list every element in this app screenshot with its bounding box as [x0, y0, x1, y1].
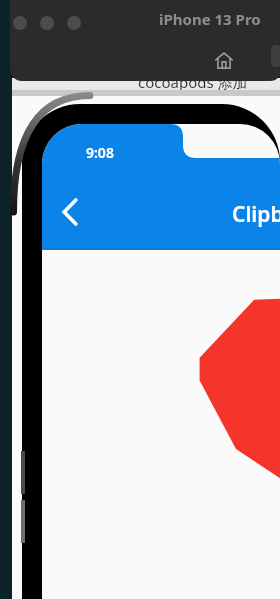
button[interactable]: Window control — [13, 16, 27, 30]
staticText: iPhone 13 Pro — [159, 9, 261, 29]
button[interactable]: iPhone 13 Pro — [159, 9, 261, 29]
button[interactable]: Window control — [67, 16, 81, 30]
staticText: 9:08 — [86, 143, 114, 162]
staticText: Clipboard — [232, 200, 280, 229]
staticText: cocoapods 添加 — [138, 72, 248, 92]
button[interactable]: Window control — [40, 16, 54, 30]
button[interactable]: Back — [48, 190, 92, 234]
button[interactable]: Home — [206, 42, 242, 78]
button[interactable]: Clipboard — [232, 200, 280, 229]
